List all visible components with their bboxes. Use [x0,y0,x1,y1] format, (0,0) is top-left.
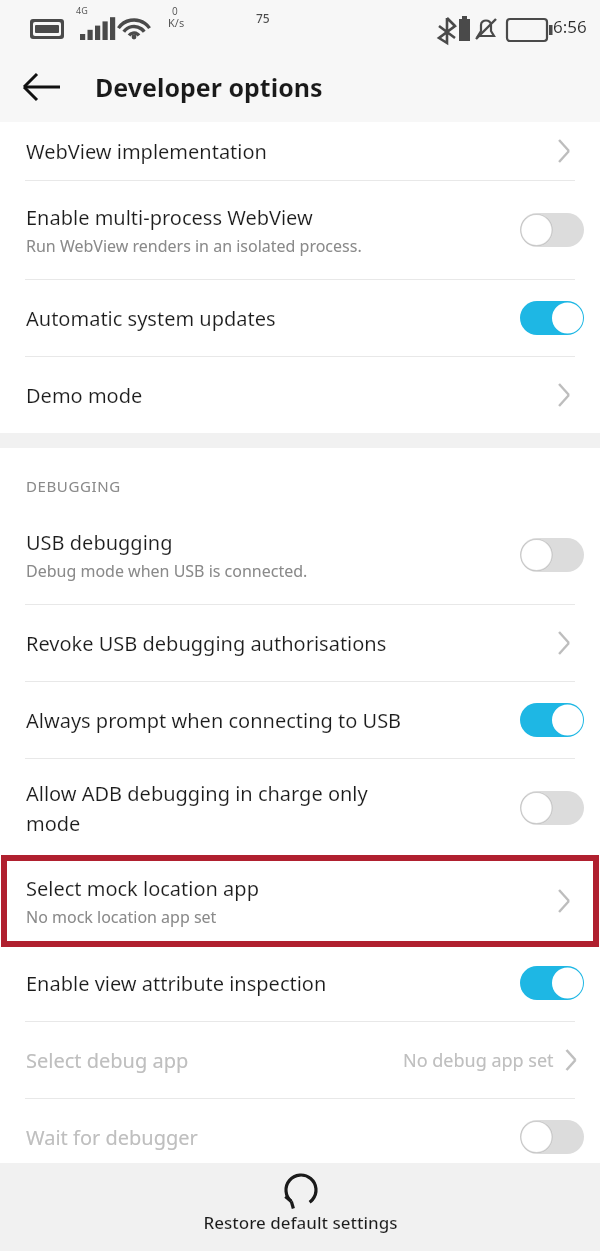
staticText: Run WebView renders in an isolated proce… [26,235,362,257]
button[interactable]: Wait for debugger [0,1099,600,1175]
staticText: K/s [168,15,185,30]
button[interactable]: Enable view attribute inspection [0,945,600,1021]
button[interactable]: USB debugging [0,506,600,604]
staticText: WebView implementation [26,138,544,165]
staticText: Enable multi-process WebView [26,204,313,231]
button[interactable]: Select debug app [0,1022,600,1098]
button[interactable]: Restore default settings [0,1163,600,1251]
staticText: 75 [256,10,270,26]
button[interactable]: Demo mode [0,357,600,433]
button[interactable]: Allow ADB debugging in charge only mode [0,759,600,857]
staticText: Demo mode [26,382,544,409]
button[interactable]: Automatic system updates [0,280,600,356]
staticText: Select debug app [26,1047,403,1074]
button[interactable]: Always prompt when connecting to USB [0,682,600,758]
staticText: Select mock location app [26,875,259,902]
staticText: Revoke USB debugging authorisations [26,630,544,657]
staticText: No debug app set [403,1048,554,1073]
button[interactable]: Revoke USB debugging authorisations [0,605,600,681]
staticText: 0 [172,4,178,18]
staticText: Enable view attribute inspection [26,970,518,997]
staticText: Wait for debugger [26,1124,518,1151]
staticText: Restore default settings [203,1211,398,1234]
staticText: Automatic system updates [26,305,518,332]
staticText: DEBUGGING [26,476,121,496]
staticText: Developer options [95,70,323,104]
staticText: Debug mode when USB is connected. [26,560,308,582]
button[interactable]: WebView implementation [0,122,600,180]
button[interactable]: Select mock location app [0,857,600,945]
button[interactable]: Back [12,57,72,117]
staticText: Allow ADB debugging in charge only mode [26,780,518,837]
staticText: No mock location app set [26,906,217,928]
staticText: 6:56 [553,15,587,38]
staticText: 4G [76,4,88,16]
staticText: Always prompt when connecting to USB [26,707,518,734]
staticText: USB debugging [26,529,173,556]
button[interactable]: Enable multi-process WebView [0,181,600,279]
